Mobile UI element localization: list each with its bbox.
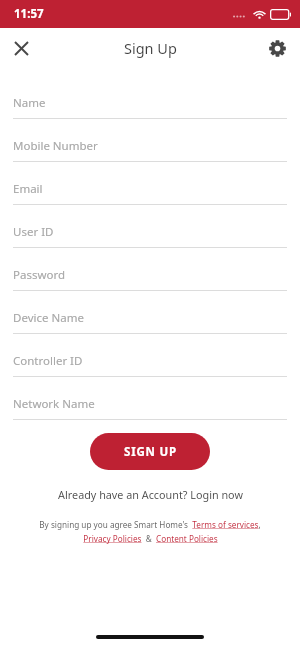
staticText: 11:57 bbox=[14, 6, 44, 22]
button[interactable]: Privacy Policies & Content Policies bbox=[83, 533, 218, 544]
button[interactable]: Settings bbox=[257, 28, 297, 68]
button[interactable]: Email bbox=[0, 174, 300, 205]
button[interactable]: SIGN UP bbox=[90, 433, 210, 470]
button[interactable]: Network Name bbox=[0, 389, 300, 420]
button[interactable]: Already have an Account? Login now bbox=[0, 487, 300, 502]
staticText: Sign Up bbox=[124, 38, 177, 58]
staticText: Mobile Number bbox=[13, 138, 98, 154]
button[interactable]: Name bbox=[0, 88, 300, 119]
button[interactable]: Password bbox=[0, 260, 300, 291]
staticText: Network Name bbox=[13, 396, 95, 412]
staticText: Name bbox=[13, 95, 46, 111]
staticText: User ID bbox=[13, 224, 54, 240]
staticText: Email bbox=[13, 181, 43, 197]
button[interactable]: Device Name bbox=[0, 303, 300, 334]
button[interactable]: Controller ID bbox=[0, 346, 300, 377]
staticText: Device Name bbox=[13, 310, 84, 326]
button[interactable]: Close bbox=[1, 28, 41, 68]
staticText: Already have an Account? Login now bbox=[58, 487, 243, 502]
button[interactable]: Mobile Number bbox=[0, 131, 300, 162]
staticText: Password bbox=[13, 267, 66, 283]
staticText: Controller ID bbox=[13, 353, 83, 369]
button[interactable]: By signing up you agree Smart Home's Ter… bbox=[39, 519, 261, 530]
button[interactable]: User ID bbox=[0, 217, 300, 248]
staticText: SIGN UP bbox=[124, 444, 177, 460]
